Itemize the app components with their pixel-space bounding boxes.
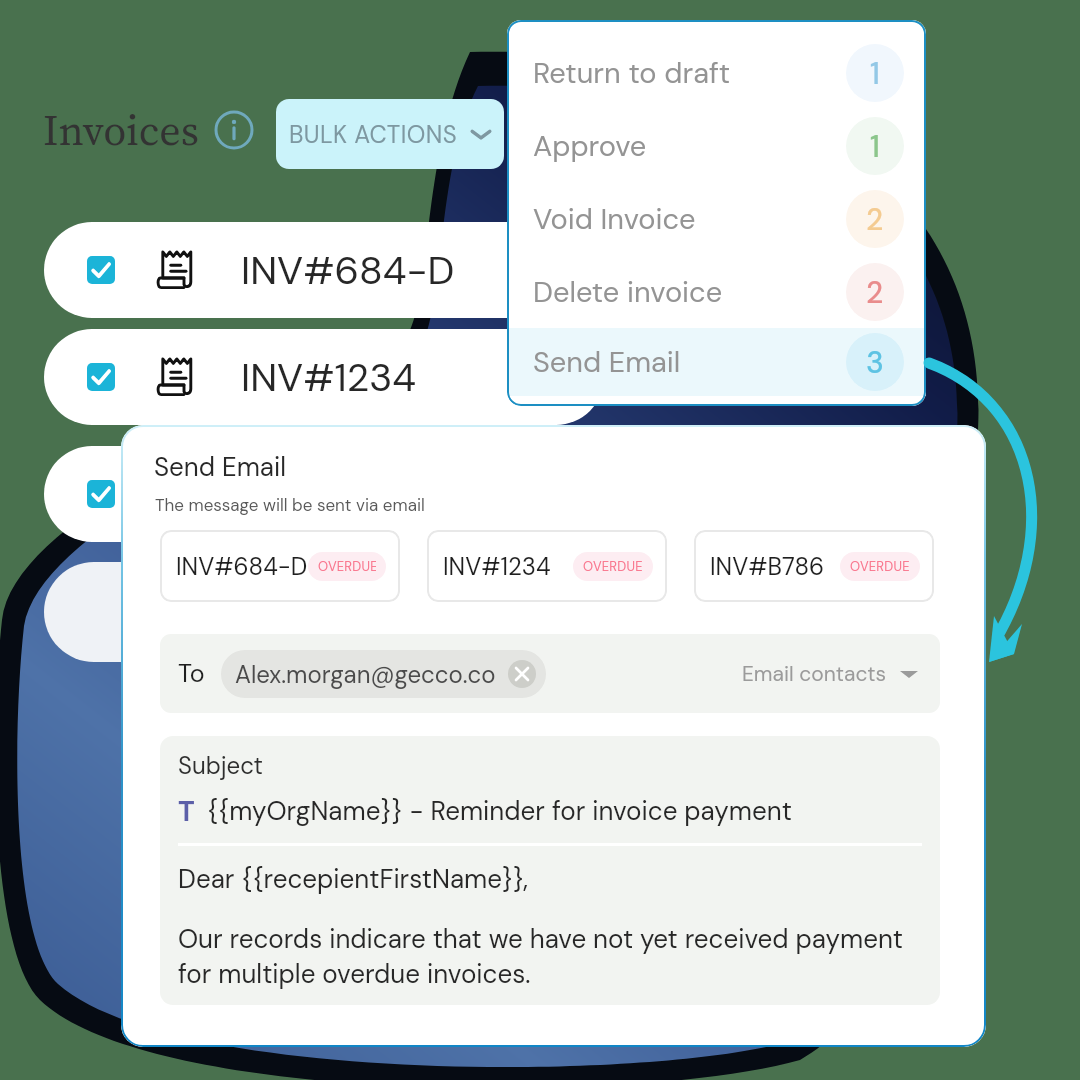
staticText: Delete invoice xyxy=(533,273,723,311)
button[interactable]: Approve xyxy=(507,109,926,182)
staticText: T xyxy=(178,793,195,829)
button[interactable]: Remove recipient xyxy=(508,660,536,688)
staticText: OVERDUE xyxy=(318,558,376,575)
staticText: OVERDUE xyxy=(850,558,910,575)
staticText: 1 xyxy=(870,127,880,166)
button[interactable]: Selected xyxy=(44,329,604,425)
staticText: Approve xyxy=(533,127,647,165)
button[interactable]: INV#B786 xyxy=(694,530,934,602)
staticText: INV#B786 xyxy=(241,469,427,520)
staticText: Email contacts xyxy=(742,660,886,687)
staticText: BULK ACTIONS xyxy=(289,119,457,150)
staticText: Void Invoice xyxy=(533,200,696,238)
staticText: Subject xyxy=(178,750,263,781)
staticText: 2 xyxy=(866,273,884,312)
button[interactable]: Send Email xyxy=(507,328,926,396)
staticText: Return to draft xyxy=(533,54,731,92)
staticText: Send Email xyxy=(533,343,681,381)
staticText: Invoices xyxy=(43,101,199,159)
staticText: The message will be sent via email xyxy=(155,494,425,516)
button[interactable]: Selected xyxy=(87,363,115,391)
staticText: INV#684-D xyxy=(241,245,455,296)
staticText: 2 xyxy=(866,200,884,239)
button[interactable]: Alex.morgan@gecco.co xyxy=(221,650,546,698)
button[interactable]: Void Invoice xyxy=(507,182,926,255)
staticText: INV#B786 xyxy=(710,551,825,582)
staticText: OVERDUE xyxy=(583,558,643,575)
staticText: {{myOrgName}} - Reminder for invoice pay… xyxy=(207,794,792,828)
staticText: INV#684-D xyxy=(176,551,308,582)
button[interactable]: INV#1234 xyxy=(427,530,667,602)
staticText: 3 xyxy=(866,343,884,382)
button[interactable]: Selected xyxy=(44,222,604,318)
button[interactable]: Selected xyxy=(87,480,115,508)
staticText: Send Email xyxy=(154,450,287,484)
button[interactable]: BULK ACTIONS xyxy=(276,99,504,169)
button[interactable]: Delete invoice xyxy=(507,255,926,328)
button[interactable]: Email contacts xyxy=(742,660,918,687)
button[interactable]: Info xyxy=(214,110,254,150)
button[interactable]: INV#684-D xyxy=(160,530,400,602)
staticText: Alex.morgan@gecco.co xyxy=(235,659,496,690)
button[interactable]: Return to draft xyxy=(507,36,926,109)
staticText: Our records indicare that we have not ye… xyxy=(178,922,904,991)
button[interactable]: Selected xyxy=(87,256,115,284)
staticText: INV#1234 xyxy=(241,352,416,403)
staticText: Dear {{recepientFirstName}}, xyxy=(178,862,529,896)
button[interactable]: Selected xyxy=(44,446,604,542)
staticText: INV#1234 xyxy=(443,551,551,582)
staticText: To xyxy=(178,657,205,690)
staticText: 1 xyxy=(870,54,880,93)
